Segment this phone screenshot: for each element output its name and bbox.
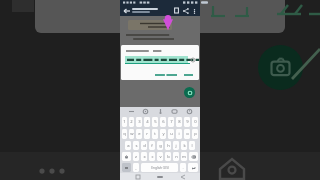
- staticText: ,: [135, 165, 137, 171]
- button[interactable]: 4: [144, 117, 150, 127]
- button[interactable]: b: [165, 152, 171, 161]
- staticText: g: [159, 143, 162, 149]
- staticText: i: [178, 131, 180, 137]
- button[interactable]: Symbols: [122, 163, 131, 172]
- staticText: u: [170, 131, 173, 137]
- button[interactable]: 2: [129, 117, 134, 127]
- staticText: h: [167, 143, 170, 149]
- staticText: 9: [186, 119, 189, 125]
- button[interactable]: i: [176, 129, 182, 139]
- staticText: v: [159, 154, 162, 160]
- staticText: b: [167, 154, 170, 160]
- staticText: j: [175, 143, 177, 149]
- staticText: z: [135, 154, 137, 160]
- button[interactable]: Keyboard tool 2: [157, 108, 164, 115]
- button[interactable]: Backspace: [189, 152, 198, 161]
- button[interactable]: English (US): [141, 163, 178, 172]
- button[interactable]: Back: [179, 174, 187, 180]
- button[interactable]: [182, 71, 195, 77]
- button[interactable]: t: [152, 129, 158, 139]
- button[interactable]: [125, 56, 188, 63]
- staticText: t: [154, 131, 156, 137]
- button[interactable]: Clear: [190, 57, 195, 62]
- staticText: 8: [178, 119, 181, 125]
- button[interactable]: n: [173, 152, 179, 161]
- button[interactable]: y: [160, 129, 166, 139]
- button[interactable]: Home: [155, 174, 165, 180]
- button[interactable]: Send: [184, 87, 195, 98]
- button[interactable]: 9: [184, 117, 190, 127]
- staticText: 3: [138, 119, 141, 125]
- button[interactable]: c: [149, 152, 155, 161]
- staticText: w: [130, 131, 134, 137]
- button[interactable]: k: [181, 141, 187, 150]
- staticText: o: [186, 131, 189, 137]
- button[interactable]: Document: [172, 6, 181, 15]
- button[interactable]: z: [133, 152, 139, 161]
- staticText: m: [182, 154, 186, 160]
- staticText: d: [143, 143, 146, 149]
- staticText: c: [151, 154, 154, 160]
- button[interactable]: Shift: [122, 152, 131, 161]
- staticText: e: [138, 131, 141, 137]
- staticText: 1: [123, 119, 126, 125]
- button[interactable]: e: [136, 129, 142, 139]
- button[interactable]: o: [184, 129, 190, 139]
- button[interactable]: Recents: [134, 174, 142, 180]
- staticText: 4: [146, 119, 149, 125]
- button[interactable]: ,: [133, 163, 139, 172]
- button[interactable]: Enter: [188, 163, 198, 172]
- button[interactable]: d: [141, 141, 147, 150]
- button[interactable]: h: [165, 141, 171, 150]
- button[interactable]: [153, 71, 179, 77]
- button[interactable]: 3: [136, 117, 142, 127]
- button[interactable]: u: [168, 129, 174, 139]
- button[interactable]: g: [157, 141, 163, 150]
- staticText: r: [146, 131, 148, 137]
- button[interactable]: .: [180, 163, 186, 172]
- button[interactable]: 7: [168, 117, 174, 127]
- button[interactable]: p: [192, 129, 198, 139]
- button[interactable]: s: [133, 141, 139, 150]
- staticText: a: [127, 143, 130, 149]
- staticText: 0: [194, 119, 197, 125]
- button[interactable]: Keyboard tool 0: [128, 108, 135, 115]
- button[interactable]: 5: [152, 117, 158, 127]
- staticText: n: [175, 154, 178, 160]
- staticText: x: [143, 154, 146, 160]
- button[interactable]: x: [141, 152, 147, 161]
- button[interactable]: Keyboard tool 1: [142, 108, 149, 115]
- staticText: 2: [130, 119, 133, 125]
- staticText: q: [123, 131, 126, 137]
- staticText: English (US): [151, 166, 169, 170]
- staticText: l: [191, 143, 193, 149]
- staticText: 7: [170, 119, 173, 125]
- staticText: 5: [154, 119, 157, 125]
- staticText: s: [135, 143, 138, 149]
- button[interactable]: j: [173, 141, 179, 150]
- button[interactable]: Keyboard tool 3: [171, 108, 178, 115]
- button[interactable]: v: [157, 152, 163, 161]
- button[interactable]: q: [122, 129, 127, 139]
- button[interactable]: 8: [176, 117, 182, 127]
- button[interactable]: 1: [122, 117, 127, 127]
- button[interactable]: f: [149, 141, 155, 150]
- button[interactable]: Back: [122, 6, 131, 15]
- button[interactable]: 6: [160, 117, 166, 127]
- staticText: p: [194, 131, 197, 137]
- button[interactable]: w: [129, 129, 134, 139]
- button[interactable]: a: [125, 141, 131, 150]
- staticText: .: [182, 165, 184, 171]
- button[interactable]: More options: [190, 7, 198, 15]
- staticText: y: [162, 131, 165, 137]
- button[interactable]: Keyboard tool 4: [186, 108, 193, 115]
- button[interactable]: r: [144, 129, 150, 139]
- staticText: f: [151, 143, 153, 149]
- staticText: k: [183, 143, 186, 149]
- button[interactable]: m: [181, 152, 187, 161]
- button[interactable]: 0: [192, 117, 198, 127]
- button[interactable]: Share: [181, 6, 190, 15]
- staticText: 6: [162, 119, 165, 125]
- button[interactable]: l: [189, 141, 195, 150]
